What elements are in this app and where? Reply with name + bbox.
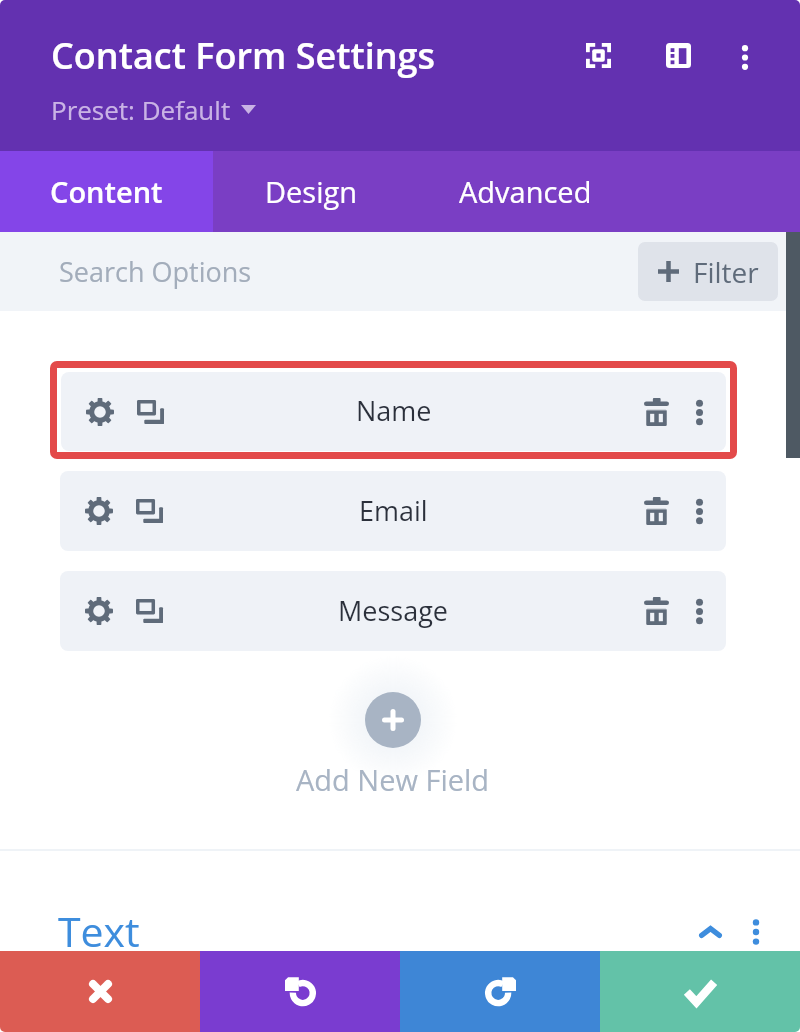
staticText: Add New Field bbox=[296, 760, 490, 799]
button[interactable]: Settings bbox=[79, 391, 121, 433]
button[interactable]: Delete bbox=[635, 590, 677, 632]
button[interactable]: Settings bbox=[78, 590, 120, 632]
button[interactable]: Settings bbox=[60, 571, 726, 651]
button[interactable]: Duplicate bbox=[129, 391, 171, 433]
button[interactable]: Section options bbox=[738, 914, 774, 950]
staticText: Filter bbox=[693, 253, 759, 291]
button[interactable]: Add New Field bbox=[0, 692, 786, 799]
staticText: Search Options bbox=[59, 253, 252, 290]
button[interactable]: Settings bbox=[60, 471, 726, 551]
button[interactable]: Duplicate bbox=[128, 590, 170, 632]
staticText: Content bbox=[50, 172, 163, 211]
button[interactable]: Field options bbox=[678, 490, 720, 532]
button[interactable]: Settings bbox=[78, 490, 120, 532]
button[interactable]: More options bbox=[723, 35, 767, 79]
staticText: Text bbox=[58, 903, 140, 959]
button[interactable]: Delete bbox=[635, 490, 677, 532]
staticText: Design bbox=[265, 172, 357, 211]
button[interactable]: Cancel bbox=[0, 951, 200, 1032]
button[interactable]: Field options bbox=[678, 590, 720, 632]
button[interactable]: Change layout bbox=[656, 33, 700, 77]
button[interactable]: Collapse section bbox=[692, 914, 728, 950]
button[interactable]: Settings bbox=[61, 372, 726, 451]
staticText: Advanced bbox=[459, 172, 592, 211]
button[interactable]: Undo bbox=[200, 951, 400, 1032]
button[interactable]: Filter bbox=[638, 242, 778, 301]
button[interactable]: Design bbox=[213, 151, 408, 232]
staticText: Contact Form Settings bbox=[51, 31, 436, 80]
button[interactable]: Redo bbox=[400, 951, 600, 1032]
staticText: Preset: Default bbox=[51, 92, 231, 127]
button[interactable]: Save bbox=[600, 951, 800, 1032]
staticText: Message bbox=[338, 592, 449, 629]
button[interactable]: Advanced bbox=[408, 151, 643, 232]
button[interactable]: Content bbox=[0, 151, 213, 232]
button[interactable]: Field options bbox=[678, 391, 720, 433]
button[interactable]: Focus mode bbox=[576, 33, 620, 77]
staticText: Email bbox=[359, 492, 428, 529]
button[interactable]: Delete bbox=[635, 391, 677, 433]
staticText: Name bbox=[356, 392, 432, 429]
button[interactable]: Duplicate bbox=[128, 490, 170, 532]
